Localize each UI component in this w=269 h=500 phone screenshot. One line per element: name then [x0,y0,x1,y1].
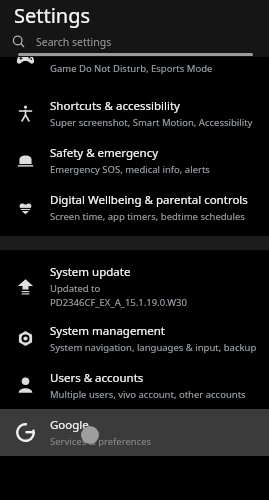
button[interactable]: Safety & emergency [0,137,269,184]
staticText: Multiple users, vivo account, other acco… [50,388,246,401]
button[interactable]: System update [0,257,269,315]
staticText: Game Do Not Disturb, Esports Mode [50,62,213,75]
staticText: Google [50,417,89,433]
button[interactable]: Ultra Game Mode [0,43,269,76]
button[interactable]: Users & accounts [0,362,269,409]
staticText: PD2346CF_EX_A_15.1.19.0.W30 [50,296,187,309]
button[interactable]: Digital Wellbeing & parental controls [0,184,269,231]
staticText: System update [50,264,131,280]
staticText: Safety & emergency [50,145,159,161]
staticText: Search settings [36,35,112,49]
button[interactable]: System management [0,315,269,362]
button[interactable]: Google [0,409,269,456]
staticText: Super screenshot, Smart Motion, Accessib… [50,116,253,129]
staticText: System navigation, languages & input, ba… [50,341,257,354]
staticText: Services & preferences [50,435,152,448]
staticText: System management [50,323,165,339]
other: Search [12,35,25,48]
button[interactable]: Shortcuts & accessibility [0,90,269,137]
staticText: Ultra Game Mode [50,44,146,60]
staticText: Shortcuts & accessibility [50,98,180,114]
staticText: Screen time, app timers, bedtime schedul… [50,210,245,223]
button[interactable]: Search [0,31,269,52]
staticText: Digital Wellbeing & parental controls [50,192,248,208]
staticText: Emergency SOS, medical info, alerts [50,163,210,176]
staticText: Settings [14,2,91,29]
staticText: Updated to [50,282,101,295]
staticText: Users & accounts [50,370,144,386]
button[interactable]: Ultra Game Mode [0,57,269,90]
